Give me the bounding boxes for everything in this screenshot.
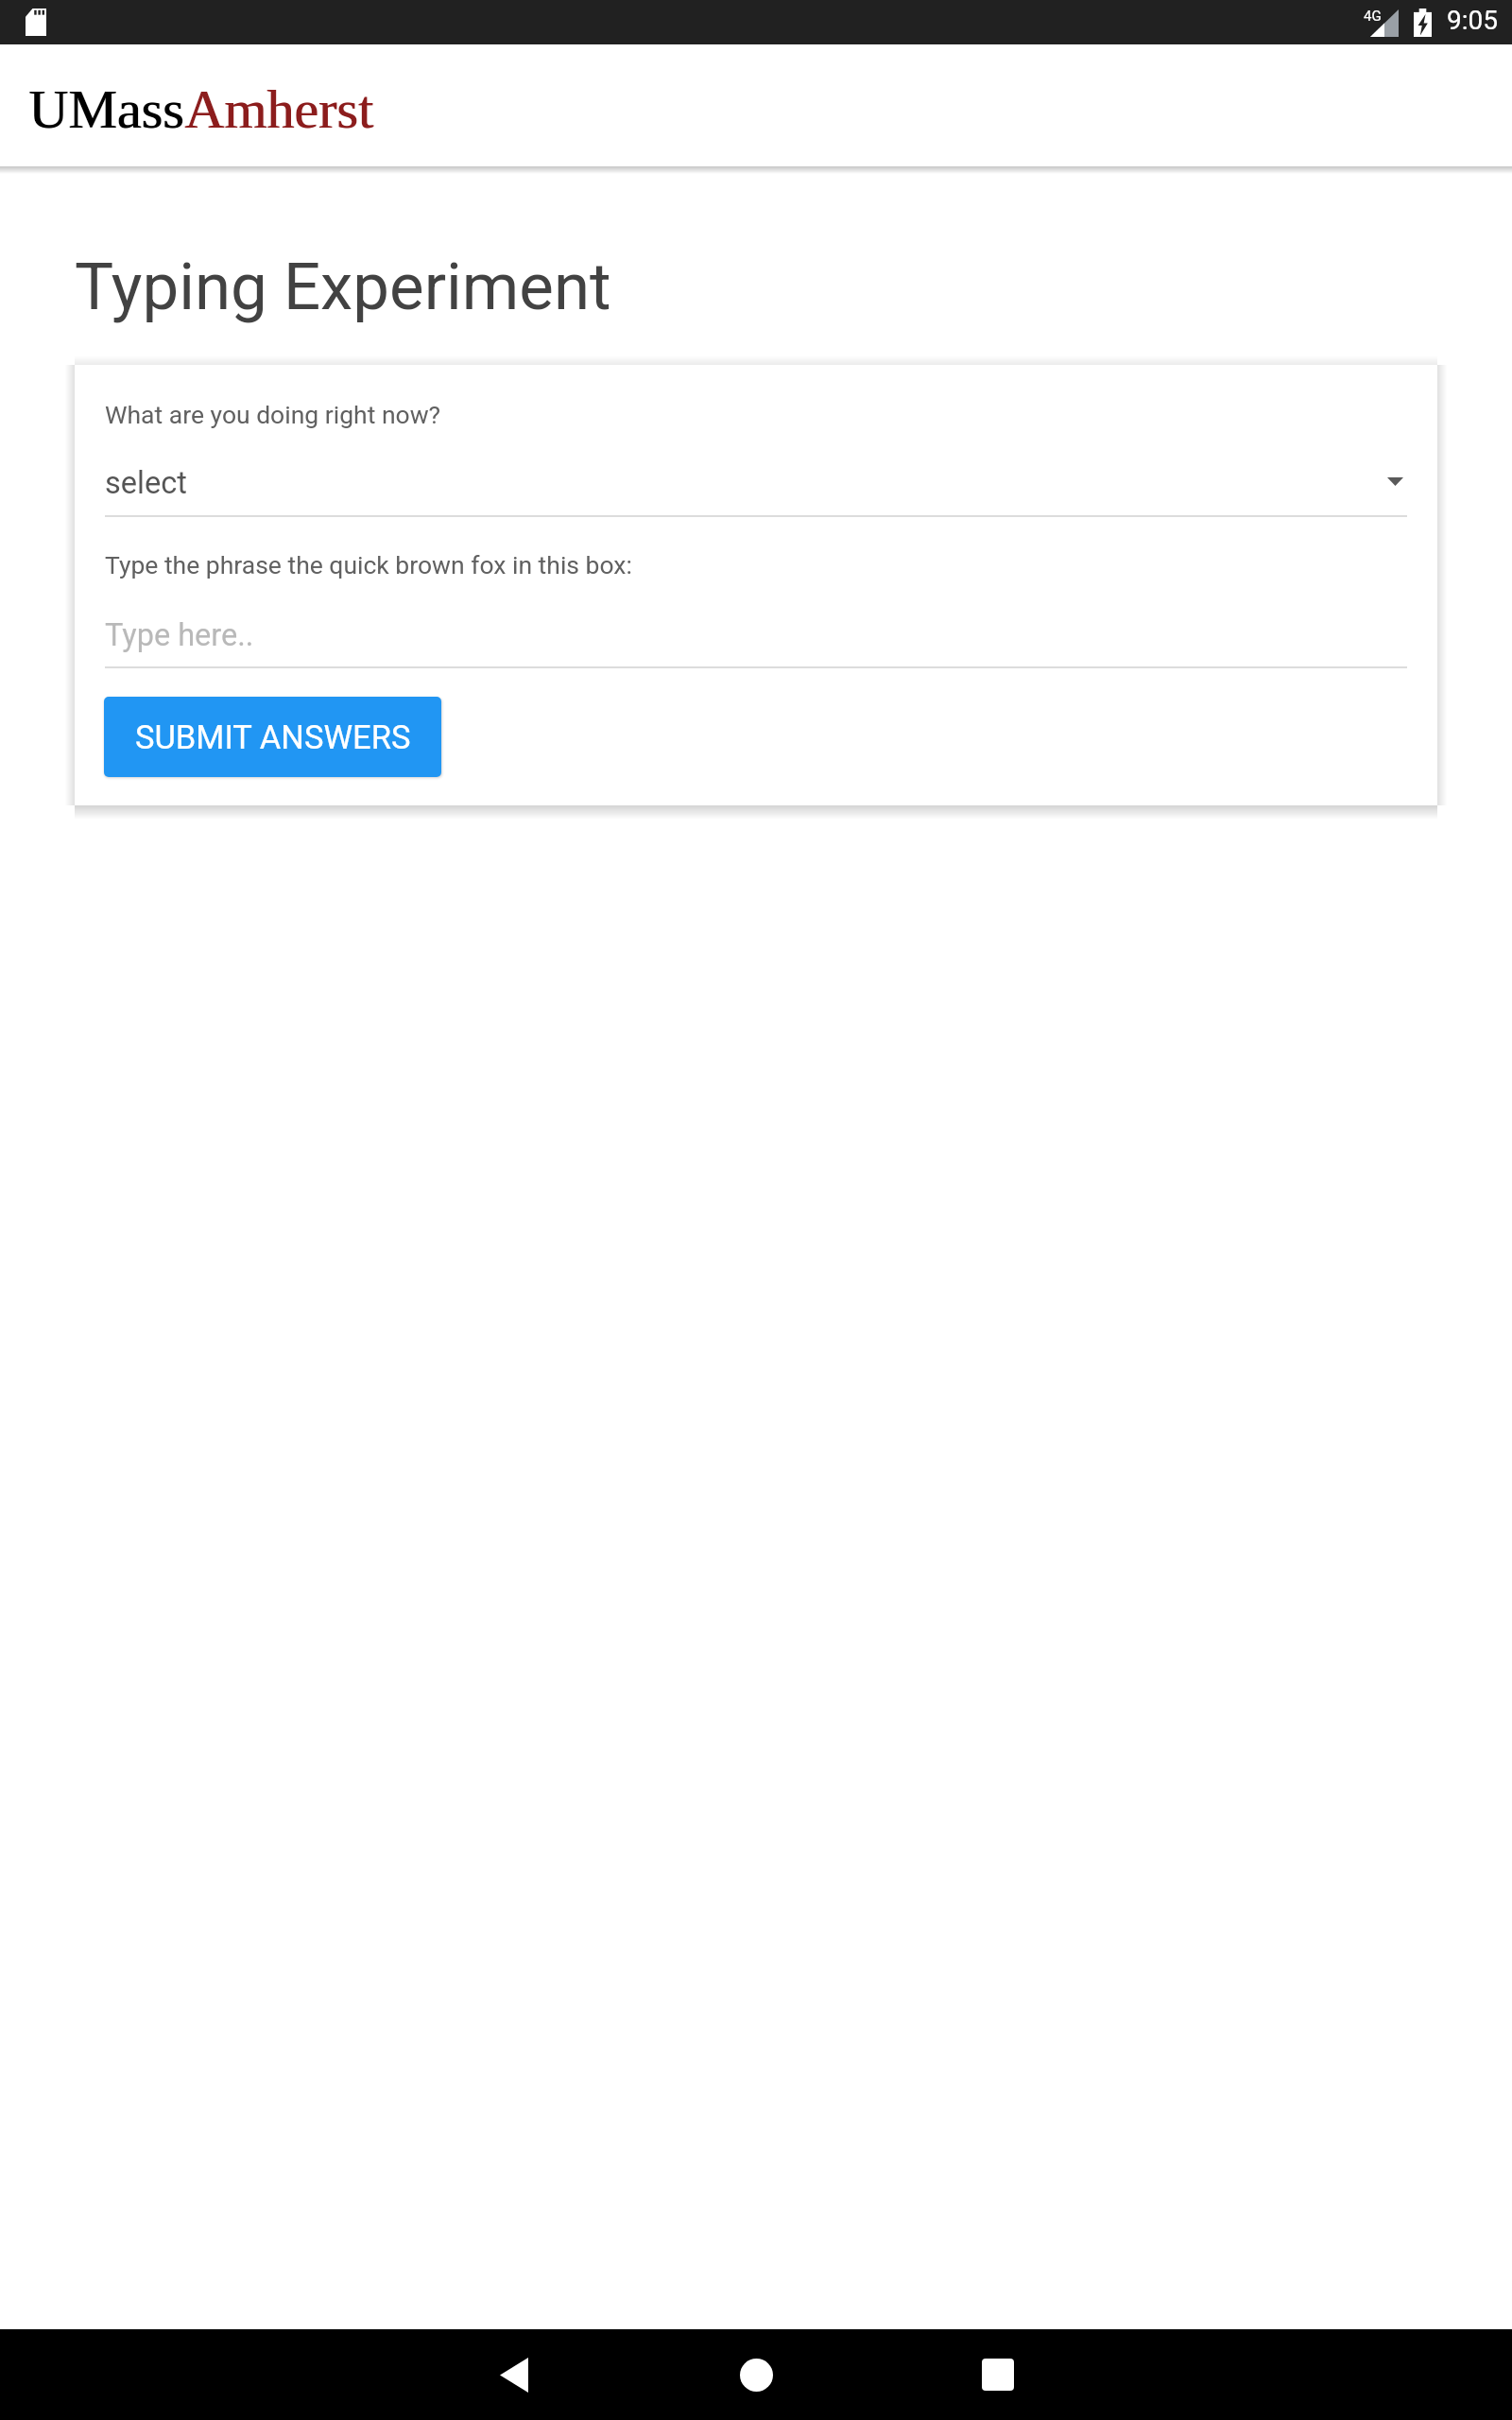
staticText: select: [105, 465, 187, 501]
staticText: Type the phrase the quick brown fox in t…: [105, 550, 632, 579]
button[interactable]: Back: [469, 2329, 559, 2420]
staticText: UMass: [29, 78, 185, 139]
staticText: UMass: [28, 78, 184, 139]
button[interactable]: select: [105, 448, 1407, 517]
staticText: SUBMIT ANSWERS: [135, 718, 411, 756]
button[interactable]: SUBMIT ANSWERS: [104, 697, 441, 777]
button[interactable]: Home: [711, 2329, 801, 2420]
staticText: Amherst: [185, 78, 374, 139]
staticText: Amherst: [184, 78, 373, 139]
staticText: Type here..: [105, 617, 254, 653]
button[interactable]: Type here..: [105, 600, 1407, 668]
staticText: 4G: [1364, 8, 1382, 25]
button[interactable]: Recent apps: [953, 2329, 1043, 2420]
staticText: 9:05: [1447, 5, 1498, 36]
staticText: What are you doing right now?: [105, 400, 441, 429]
staticText: Typing Experiment: [75, 249, 611, 325]
